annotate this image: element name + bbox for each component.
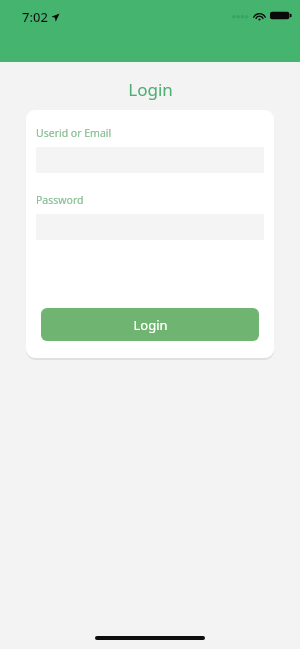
staticText: Login: [133, 316, 168, 334]
other: Home indicator: [95, 636, 205, 640]
staticText: Password: [36, 193, 84, 207]
button[interactable]: Login: [41, 308, 259, 341]
staticText: Login: [128, 78, 173, 101]
staticText: Userid or Email: [36, 126, 112, 140]
staticText: 7:02: [22, 8, 48, 26]
